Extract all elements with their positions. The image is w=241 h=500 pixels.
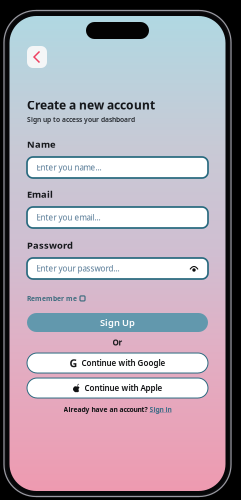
button[interactable]: Continue with Apple bbox=[27, 378, 208, 398]
staticText: Sign up to access your dashboard bbox=[27, 115, 135, 124]
button[interactable]: Already have an account? bbox=[9, 405, 225, 414]
staticText: Name bbox=[27, 138, 56, 150]
button[interactable]: G bbox=[27, 353, 208, 373]
staticText: Enter your password... bbox=[36, 263, 119, 274]
staticText: Already have an account? bbox=[63, 405, 147, 414]
staticText: Remember me bbox=[27, 294, 77, 303]
staticText: Email bbox=[27, 188, 53, 200]
staticText: Or bbox=[112, 337, 122, 348]
staticText: G bbox=[69, 356, 77, 370]
staticText: Continue with Apple bbox=[84, 383, 162, 393]
staticText: Continue with Google bbox=[81, 358, 165, 368]
button[interactable]: Remember me bbox=[27, 294, 85, 303]
staticText: Create a new account bbox=[27, 97, 155, 113]
staticText: Enter you name... bbox=[36, 162, 101, 173]
staticText: Sign in bbox=[149, 405, 171, 414]
staticText: Enter you email... bbox=[36, 212, 100, 223]
button[interactable]: Back bbox=[27, 46, 47, 68]
button[interactable]: Sign Up bbox=[27, 313, 208, 332]
staticText: Password bbox=[27, 239, 73, 251]
staticText: Sign Up bbox=[100, 316, 135, 329]
